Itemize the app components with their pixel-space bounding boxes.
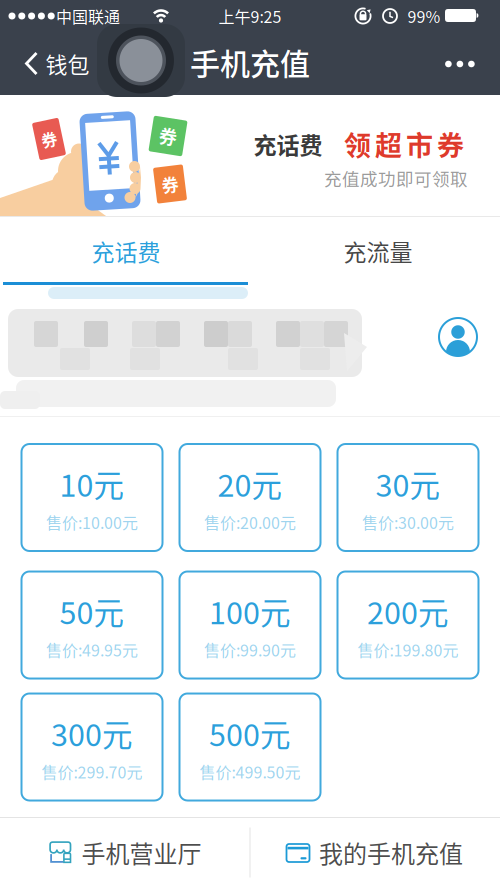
button[interactable]: 20元 — [179, 444, 320, 551]
staticText: 充值成功即可领取 — [324, 165, 468, 191]
staticText: 售价:49.95元 — [46, 638, 138, 661]
staticText: 充流量 — [343, 234, 412, 268]
button[interactable]: 充流量 — [278, 224, 478, 278]
staticText: 售价:20.00元 — [204, 510, 296, 534]
button[interactable]: 50元 — [21, 571, 162, 678]
staticText: 售价:199.80元 — [357, 638, 458, 661]
staticText: 售价:10.00元 — [46, 510, 138, 534]
button[interactable]: 500元 — [179, 693, 320, 800]
staticText: 300元 — [51, 711, 133, 755]
staticText: 上午9:25 — [218, 4, 281, 28]
staticText: 中国联通 — [56, 4, 120, 28]
staticText: 券 — [41, 127, 57, 151]
staticText: 充话费 — [253, 127, 322, 161]
staticText: 券 — [159, 123, 177, 149]
staticText: 200元 — [367, 589, 449, 633]
staticText: 售价:299.70元 — [41, 760, 142, 783]
button[interactable]: 30元 — [337, 444, 478, 551]
button[interactable]: 10元 — [21, 444, 162, 551]
staticText: 售价:99.90元 — [204, 638, 296, 661]
staticText: 充话费 — [91, 234, 160, 268]
button[interactable]: 200元 — [337, 571, 478, 678]
button[interactable]: 100元 — [179, 571, 320, 678]
button[interactable]: 更多 — [435, 50, 485, 77]
button[interactable]: 300元 — [21, 693, 162, 800]
button[interactable]: 充话费 — [26, 224, 226, 278]
button[interactable]: 手机营业厅 — [0, 818, 249, 887]
staticText: 500元 — [209, 711, 291, 755]
staticText: 领超市券 — [344, 124, 464, 164]
button[interactable]: 选择联系人 — [433, 312, 483, 362]
staticText: 我的手机充值 — [319, 835, 463, 870]
staticText: 售价:30.00元 — [362, 510, 454, 534]
staticText: 10元 — [59, 461, 124, 505]
staticText: 50元 — [59, 589, 124, 633]
staticText: 钱包 — [45, 48, 89, 79]
staticText: 100元 — [209, 589, 291, 633]
button[interactable]: 返回钱包 — [16, 42, 97, 85]
button[interactable]: 我的手机充值 — [249, 818, 499, 887]
staticText: 99% — [407, 4, 440, 28]
staticText: 手机充值 — [190, 40, 310, 84]
staticText: 20元 — [217, 461, 282, 505]
staticText: 手机营业厅 — [81, 835, 201, 870]
staticText: 券 — [161, 172, 178, 196]
staticText: 30元 — [375, 461, 440, 505]
staticText: 售价:499.50元 — [199, 760, 300, 783]
